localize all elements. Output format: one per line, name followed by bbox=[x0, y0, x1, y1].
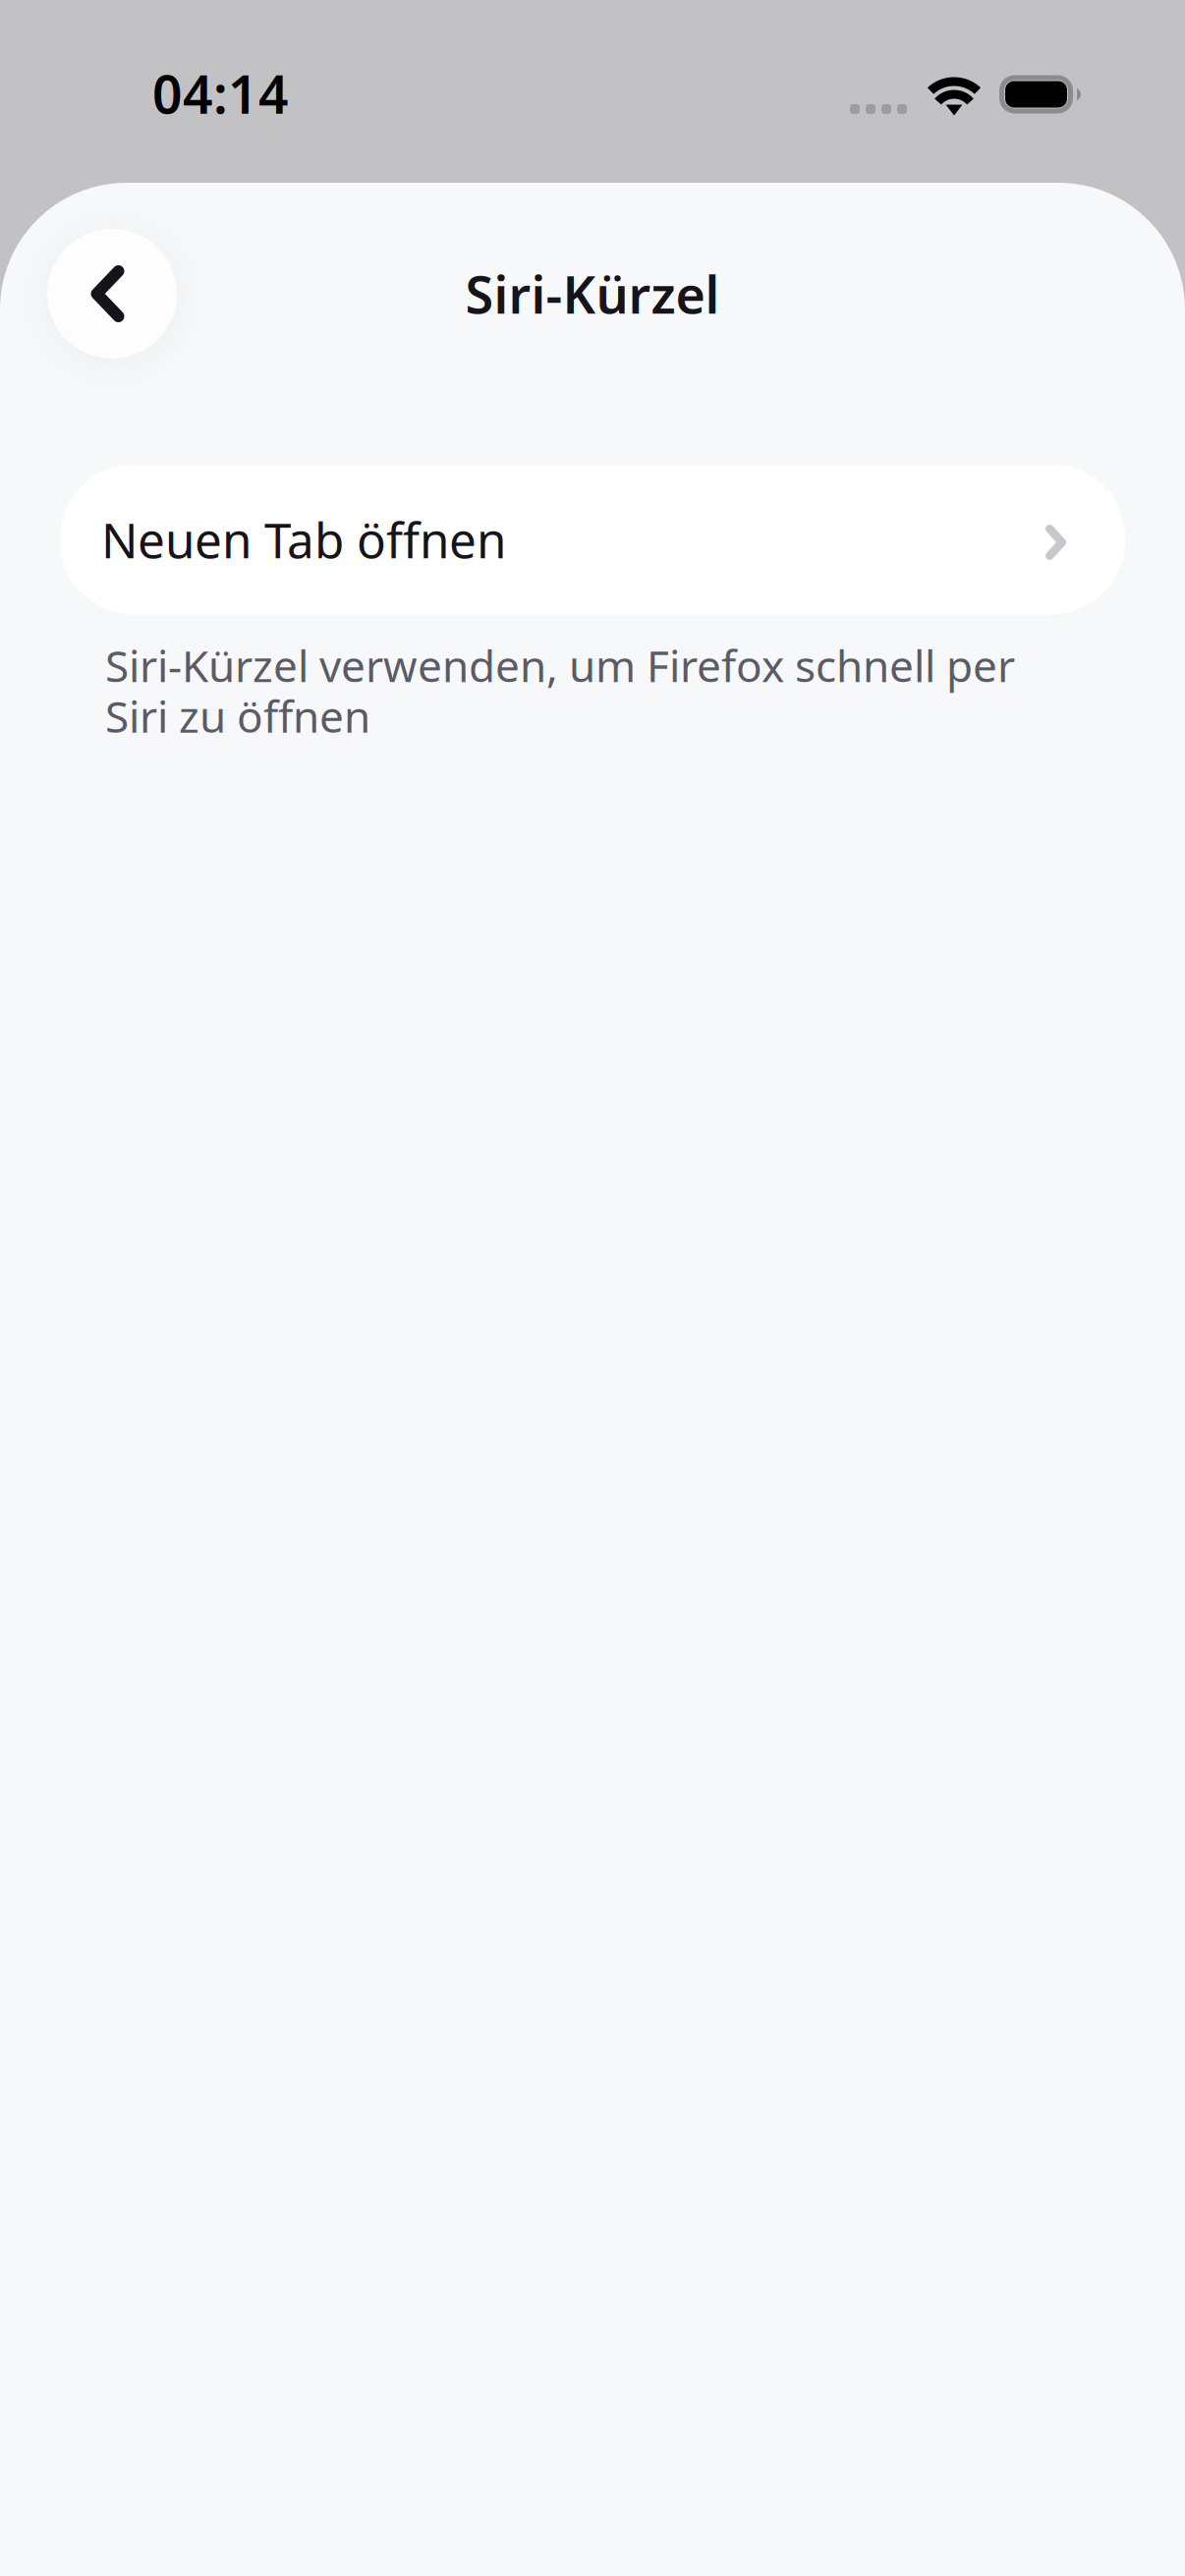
button[interactable]: Neuen Tab öffnen bbox=[60, 465, 1125, 614]
staticText: Siri-Kürzel verwenden, um Firefox schnel… bbox=[105, 637, 1015, 745]
staticText: 04:14 bbox=[152, 59, 289, 128]
staticText: Siri-Kürzel bbox=[465, 260, 720, 328]
button[interactable]: Back bbox=[47, 229, 177, 359]
staticText: Neuen Tab öffnen bbox=[101, 507, 506, 571]
